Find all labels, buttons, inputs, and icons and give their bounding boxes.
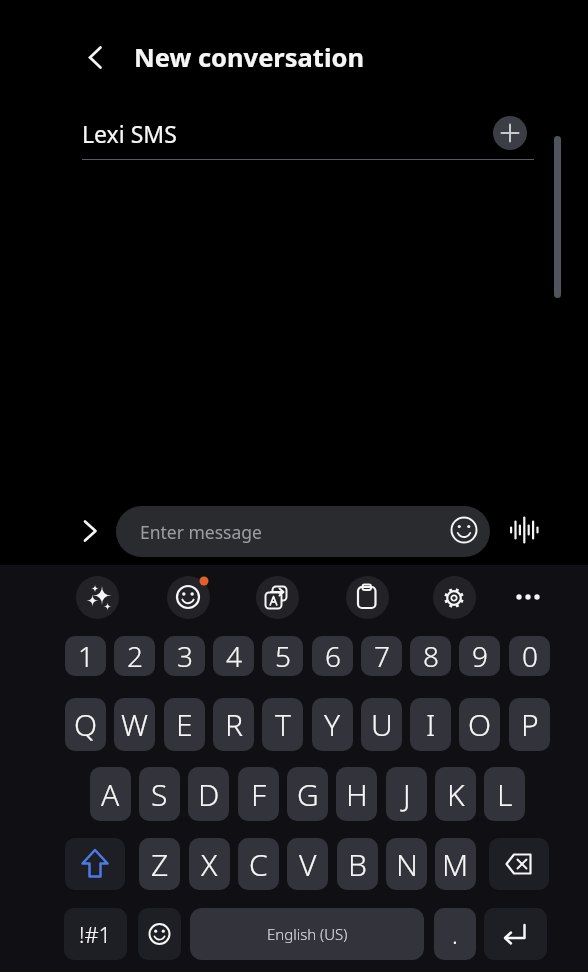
staticText: U <box>371 704 393 745</box>
staticText: 1 <box>78 637 94 675</box>
button[interactable]: P <box>509 698 550 751</box>
staticText: V <box>299 844 317 885</box>
staticText: R <box>225 704 243 745</box>
staticText: C <box>249 844 268 885</box>
button[interactable]: Enter message <box>116 506 490 557</box>
staticText: M <box>442 844 469 885</box>
staticText: O <box>468 704 492 745</box>
button[interactable]: U <box>361 698 402 751</box>
staticText: F <box>251 774 267 815</box>
staticText: Y <box>324 704 341 745</box>
button[interactable] <box>504 512 544 550</box>
button[interactable]: C <box>238 838 279 890</box>
button[interactable]: . <box>434 908 476 960</box>
staticText: 2 <box>127 637 143 675</box>
staticText: K <box>447 774 465 815</box>
staticText: L <box>497 774 513 815</box>
button[interactable]: English (US) <box>190 908 424 960</box>
button[interactable]: O <box>459 698 500 751</box>
button[interactable]: J <box>386 767 427 821</box>
staticText: Z <box>151 844 169 885</box>
button[interactable]: X <box>189 838 230 890</box>
button[interactable]: H <box>336 767 377 821</box>
staticText: 5 <box>275 637 291 675</box>
staticText: Enter message <box>140 520 262 544</box>
button[interactable]: 8 <box>410 636 451 676</box>
staticText: X <box>201 844 218 885</box>
button[interactable] <box>76 517 104 545</box>
staticText: Lexi SMS <box>82 118 177 149</box>
staticText: 9 <box>472 637 488 675</box>
button[interactable]: D <box>188 767 229 821</box>
button[interactable] <box>138 908 181 960</box>
staticText: G <box>297 774 319 815</box>
button[interactable]: K <box>435 767 476 821</box>
button[interactable]: 3 <box>164 636 205 676</box>
staticText: D <box>198 774 220 815</box>
staticText: E <box>176 704 193 745</box>
button[interactable]: E <box>164 698 205 751</box>
button[interactable]: S <box>139 767 180 821</box>
staticText: A <box>101 774 120 815</box>
button[interactable]: F <box>238 767 279 821</box>
button[interactable]: 2 <box>114 636 155 676</box>
button[interactable]: !#1 <box>64 908 127 960</box>
staticText: 3 <box>177 637 193 675</box>
staticText: I <box>426 704 436 745</box>
button[interactable] <box>256 576 299 619</box>
button[interactable] <box>78 40 112 74</box>
button[interactable]: V <box>287 838 328 890</box>
button[interactable] <box>493 116 527 150</box>
button[interactable] <box>484 908 547 960</box>
button[interactable]: Q <box>65 698 106 751</box>
button[interactable]: 9 <box>459 636 500 676</box>
button[interactable] <box>65 838 125 890</box>
staticText: New conversation <box>134 40 365 74</box>
button[interactable] <box>346 576 389 619</box>
button[interactable] <box>433 576 476 619</box>
button[interactable]: G <box>287 767 328 821</box>
staticText: N <box>396 844 418 885</box>
staticText: 7 <box>374 637 390 675</box>
button[interactable]: 1 <box>65 636 106 676</box>
button[interactable]: A <box>90 767 131 821</box>
button[interactable]: Z <box>139 838 180 890</box>
staticText: S <box>151 774 168 815</box>
button[interactable]: Y <box>312 698 353 751</box>
button[interactable] <box>489 838 549 890</box>
staticText: P <box>521 704 539 745</box>
staticText: English (US) <box>267 924 348 944</box>
button[interactable]: W <box>114 698 155 751</box>
button[interactable] <box>167 576 210 619</box>
button[interactable] <box>510 580 546 614</box>
button[interactable]: 7 <box>361 636 402 676</box>
button[interactable]: 4 <box>213 636 254 676</box>
button[interactable]: 5 <box>262 636 303 676</box>
staticText: B <box>348 844 367 885</box>
button[interactable]: 0 <box>509 636 550 676</box>
staticText: T <box>275 704 291 745</box>
staticText: 4 <box>226 637 242 675</box>
button[interactable]: B <box>337 838 378 890</box>
staticText: Q <box>74 704 98 745</box>
staticText: J <box>403 774 411 815</box>
staticText: W <box>121 704 148 745</box>
button[interactable] <box>76 576 119 619</box>
button[interactable]: N <box>386 838 427 890</box>
button[interactable]: M <box>435 838 476 890</box>
staticText: 6 <box>325 637 341 675</box>
staticText: 8 <box>423 637 439 675</box>
staticText: H <box>346 774 368 815</box>
button[interactable]: 6 <box>312 636 353 676</box>
button[interactable]: T <box>262 698 303 751</box>
staticText: !#1 <box>79 919 112 949</box>
button[interactable]: R <box>213 698 254 751</box>
button[interactable]: I <box>410 698 451 751</box>
staticText: . <box>452 918 458 951</box>
button[interactable]: L <box>484 767 525 821</box>
staticText: 0 <box>522 637 538 675</box>
